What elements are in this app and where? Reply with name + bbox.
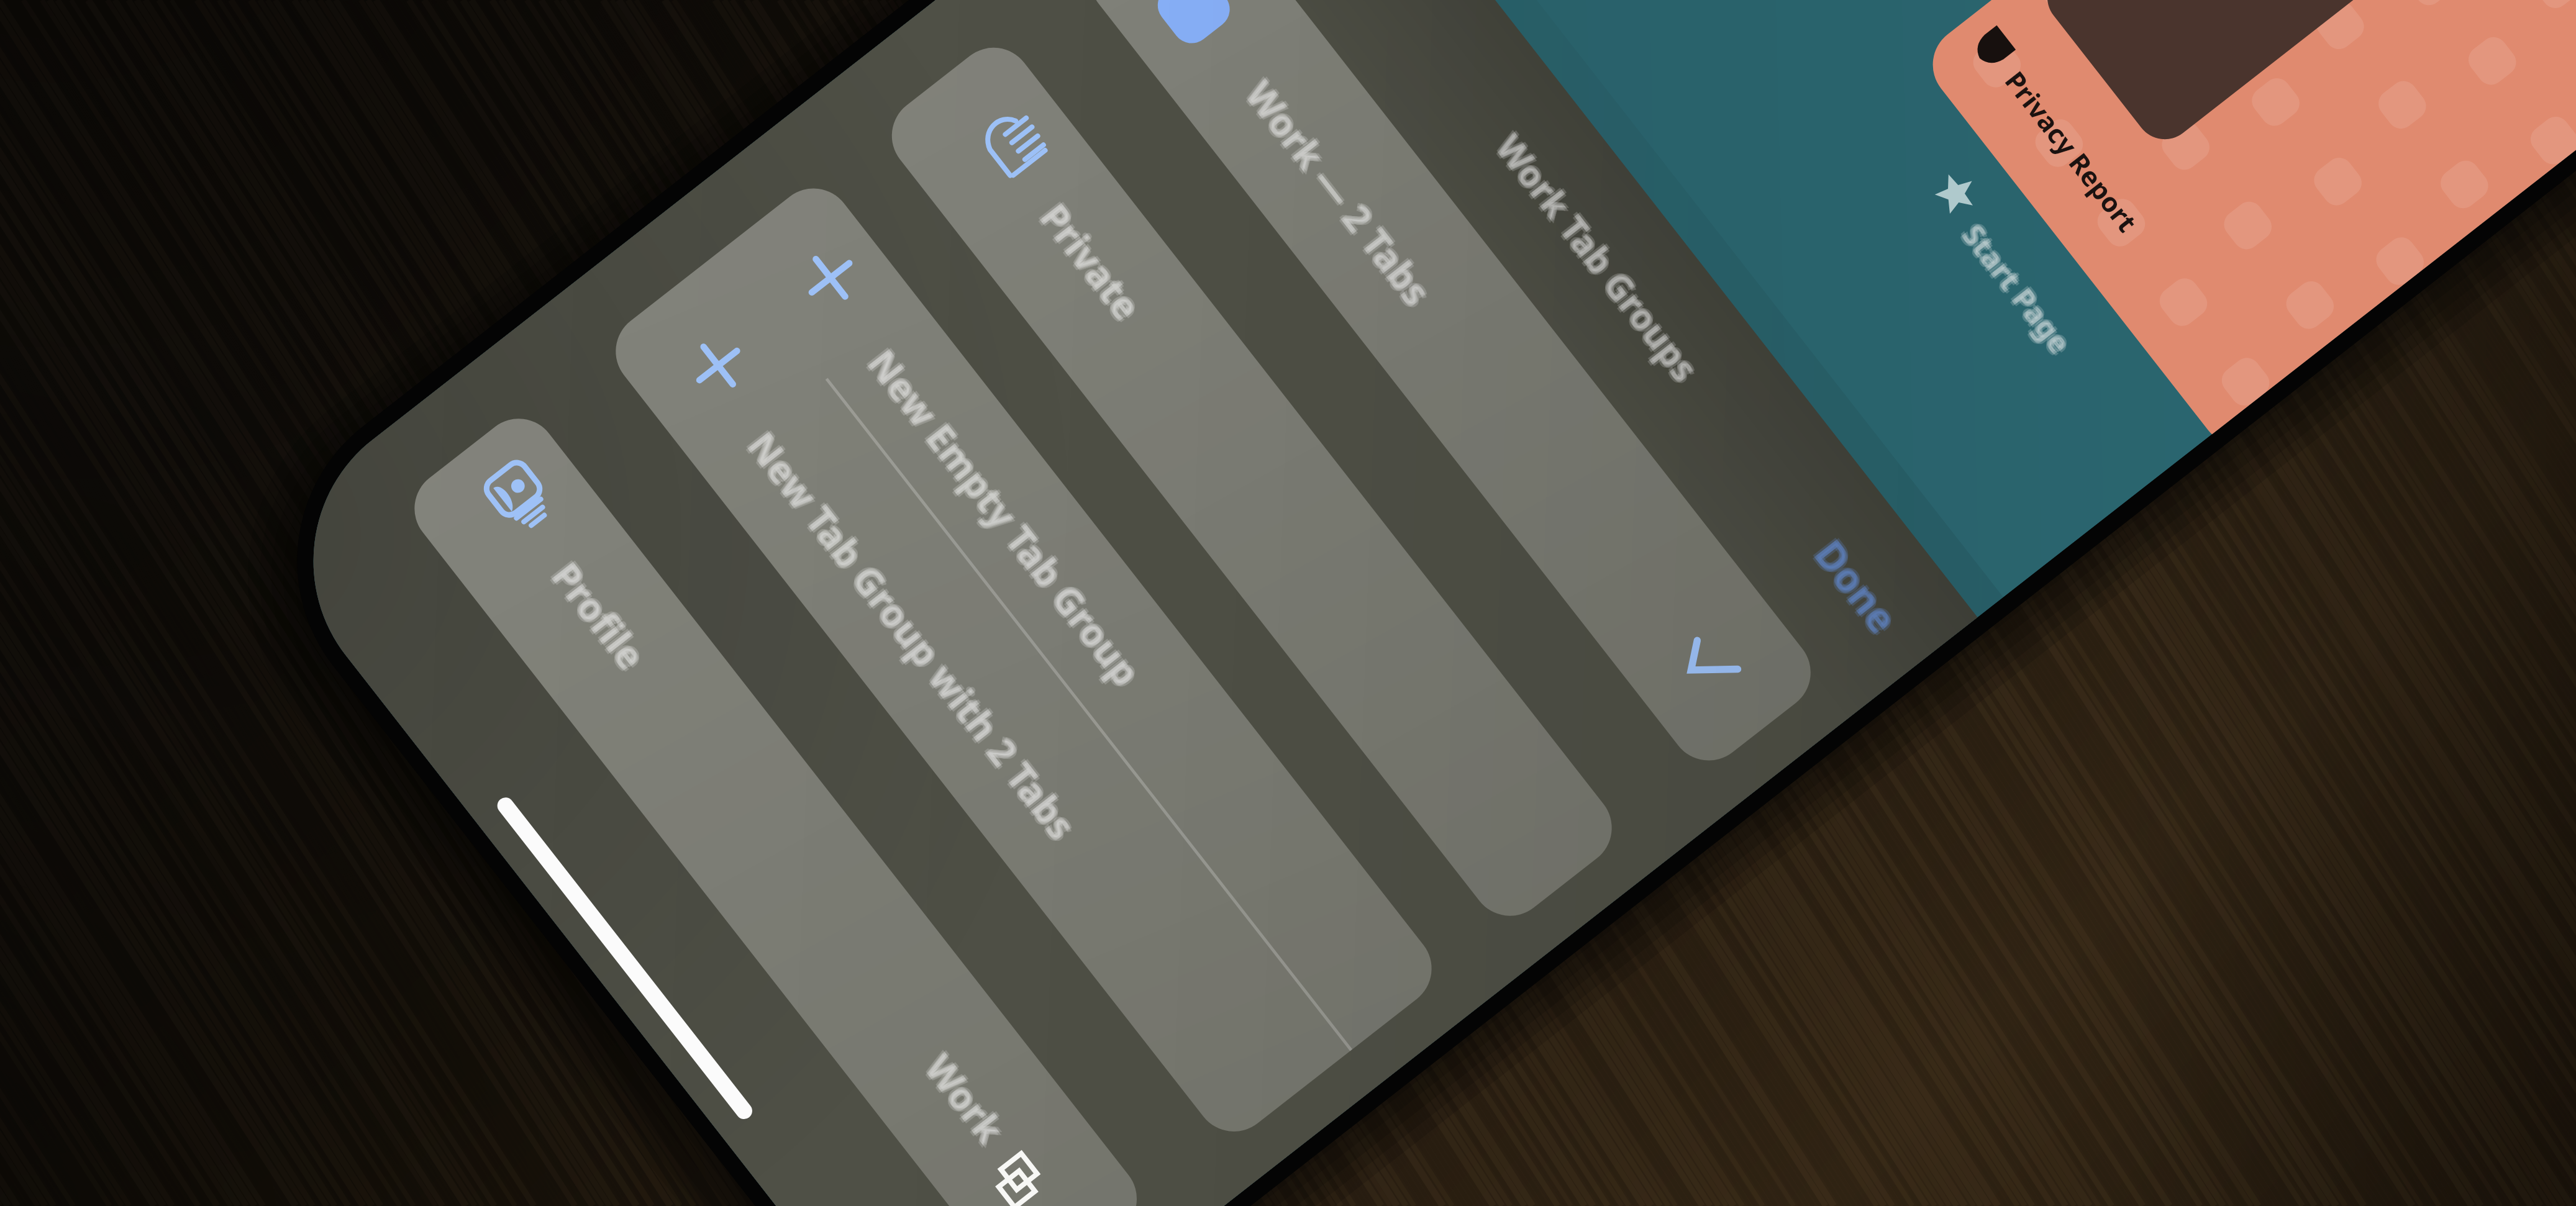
button[interactable]: Start Page tab [1918,0,2576,461]
button[interactable]: Private [876,32,1627,932]
button[interactable]: New Empty Tab Group [710,173,1447,1061]
button[interactable]: Done [1763,494,1953,695]
button[interactable]: New Tab Group with 2 Tabs [600,259,1337,1147]
button[interactable]: Work, 2 Tabs [1075,0,1826,776]
button[interactable]: Profile [399,403,745,782]
button[interactable]: Work tab group [831,955,1152,1206]
